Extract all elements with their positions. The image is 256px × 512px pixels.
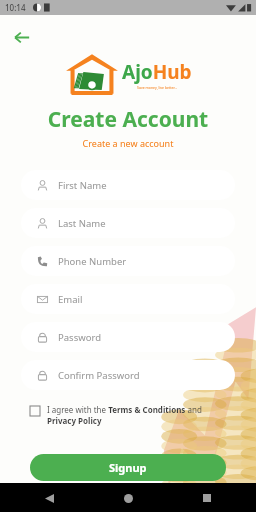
button[interactable]: Phone Number — [21, 246, 235, 276]
button[interactable]: I agree with the Terms & Conditions and … — [30, 404, 226, 426]
staticText: Phone Number — [58, 255, 127, 268]
staticText: Email — [58, 293, 83, 306]
staticText: First Name — [58, 179, 107, 192]
button[interactable]: Last Name — [21, 208, 235, 238]
staticText: Create Account — [0, 105, 256, 134]
staticText: Signup — [109, 460, 147, 475]
button[interactable]: Signup — [30, 454, 226, 481]
button[interactable]: Password — [21, 322, 235, 352]
staticText: Last Name — [58, 217, 106, 230]
button[interactable]: First Name — [21, 170, 235, 200]
staticText: I agree with the Terms & Conditions and … — [47, 404, 226, 426]
button[interactable]: Email — [21, 284, 235, 314]
button[interactable]: Confirm Password — [21, 360, 235, 390]
button[interactable]: Back — [6, 22, 36, 52]
button[interactable]: Recent apps — [196, 487, 218, 509]
button[interactable]: Home — [117, 487, 139, 509]
staticText: Password — [58, 331, 101, 344]
staticText: 10:14 — [5, 2, 26, 13]
staticText: Create a new account — [0, 137, 256, 149]
staticText: Save money, live better... — [137, 85, 178, 90]
staticText: Confirm Password — [58, 369, 140, 382]
staticText: AjoHub — [122, 59, 192, 85]
button[interactable]: Back — [38, 487, 60, 509]
